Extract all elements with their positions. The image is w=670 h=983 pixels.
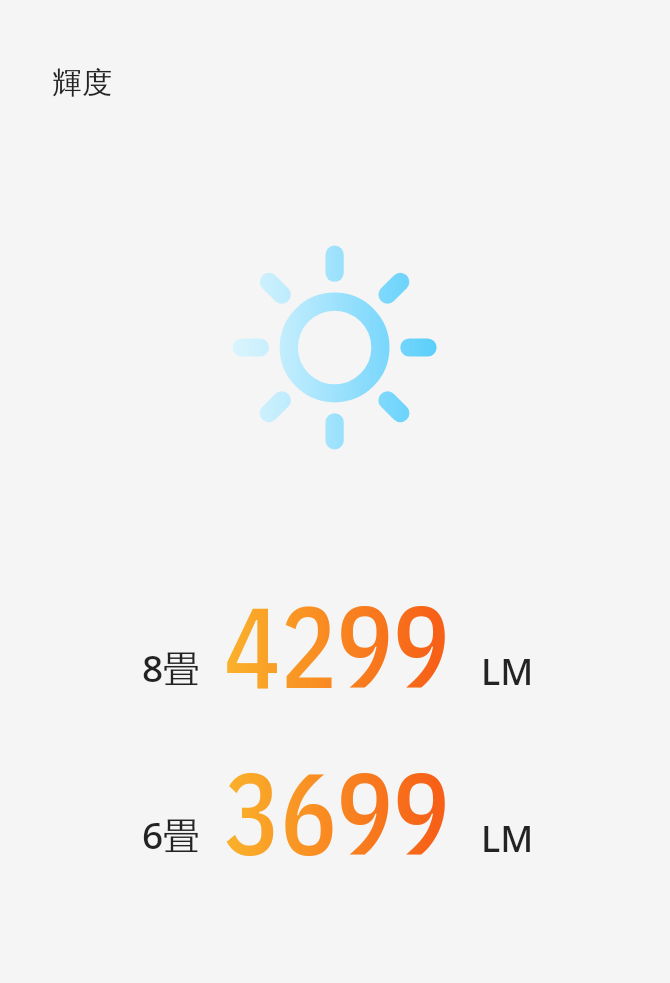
staticText: 4299 — [224, 571, 450, 719]
button[interactable]: 6畳 — [0, 727, 670, 907]
staticText: 輝度 — [52, 64, 112, 102]
button[interactable]: 8畳 — [0, 560, 670, 740]
button[interactable]: Brightness — [225, 238, 445, 458]
staticText: 6畳 — [142, 809, 201, 860]
staticText: 3699 — [224, 738, 450, 886]
staticText: LM — [481, 647, 534, 696]
staticText: 8畳 — [142, 642, 201, 693]
staticText: LM — [481, 814, 534, 863]
